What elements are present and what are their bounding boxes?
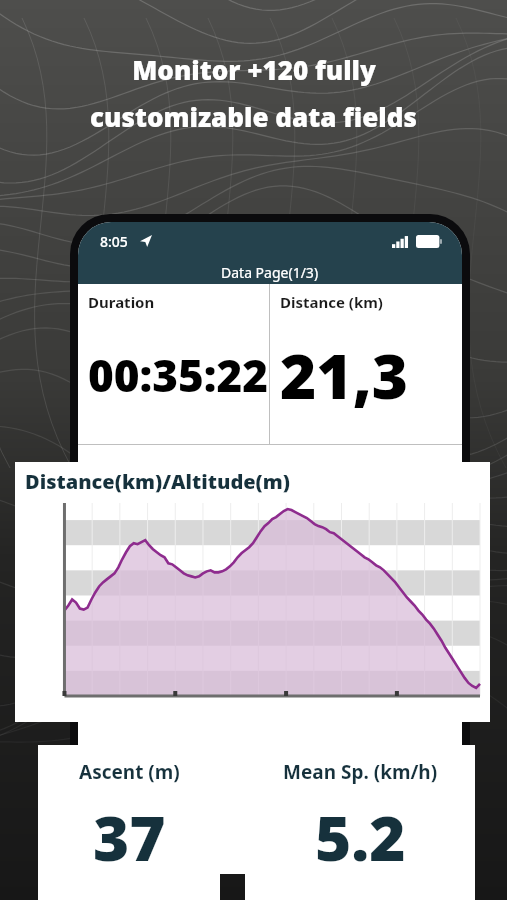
staticText: customizable data fields [90, 99, 417, 134]
other: Altitude profile chart [25, 499, 484, 716]
button[interactable]: Distance(km)/Altitude(m) [15, 462, 490, 722]
staticText: 37 [93, 795, 166, 879]
staticText: Distance(km)/Altitude(m) [25, 468, 290, 495]
staticText: Distance (km) [280, 292, 383, 312]
staticText: 00:35:22 [88, 345, 269, 405]
staticText: Data Page(1/3) [221, 263, 319, 282]
staticText: Mean Sp. (km/h) [283, 759, 438, 785]
staticText: Ascent (m) [79, 759, 180, 785]
staticText: 8:05 [100, 232, 128, 251]
staticText: Monitor +120 fully [132, 52, 376, 87]
button[interactable]: Distance (km) [270, 284, 462, 444]
staticText: Duration [88, 292, 155, 312]
button[interactable]: Ascent (m) [38, 745, 220, 900]
button[interactable]: Data Page(1/3) [78, 260, 462, 284]
staticText: 5.2 [315, 795, 406, 879]
button[interactable]: Duration [78, 284, 269, 444]
staticText: 21,3 [280, 333, 409, 417]
button[interactable]: Mean Sp. (km/h) [245, 745, 475, 900]
